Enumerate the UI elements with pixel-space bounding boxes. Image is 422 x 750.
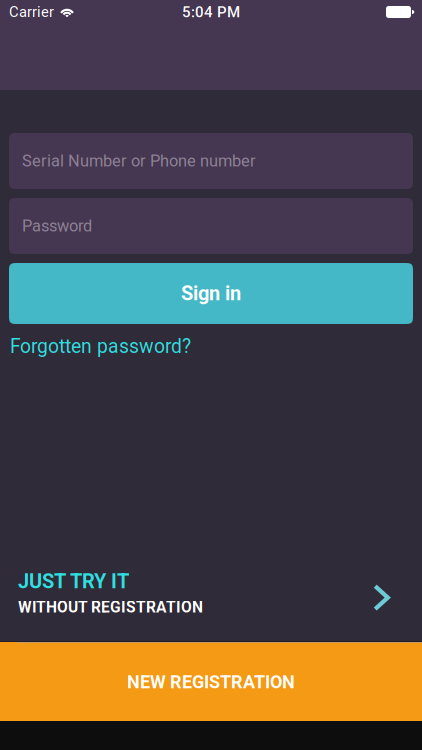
staticText: NEW REGISTRATION	[127, 671, 295, 693]
button[interactable]: JUST TRY IT	[9, 565, 413, 621]
staticText: JUST TRY IT	[18, 570, 129, 593]
button[interactable]: Password	[9, 198, 413, 254]
staticText: 5:04 PM	[182, 3, 240, 21]
staticText: Serial Number or Phone number	[22, 151, 256, 171]
staticText: Forgotten password?	[10, 335, 191, 358]
staticText: Password	[22, 216, 92, 236]
staticText: Sign in	[181, 282, 241, 305]
button[interactable]: Forgotten password?	[10, 329, 191, 364]
button[interactable]: NEW REGISTRATION	[0, 642, 422, 721]
staticText: Carrier	[9, 3, 54, 21]
staticText: WITHOUT REGISTRATION	[18, 598, 203, 616]
button[interactable]: Serial Number or Phone number	[9, 133, 413, 189]
button[interactable]: Sign in	[9, 263, 413, 324]
